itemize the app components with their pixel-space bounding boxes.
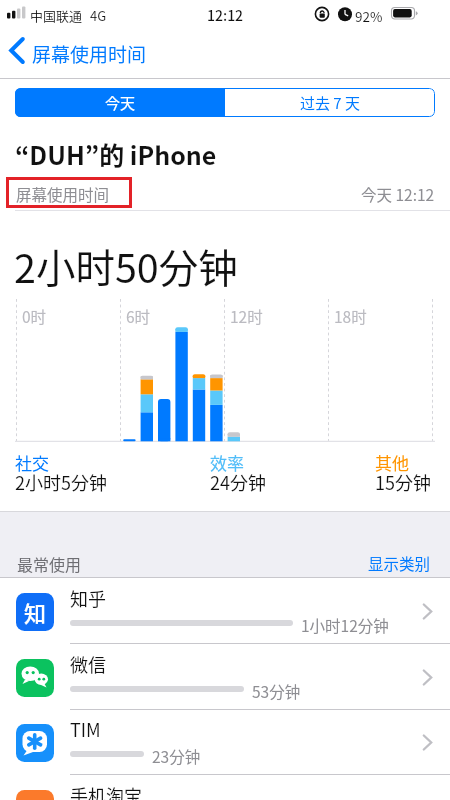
staticText: 中国联通 xyxy=(30,6,83,25)
staticText: 12时 xyxy=(230,305,263,327)
button[interactable]: 手机淘宝 xyxy=(0,775,450,800)
staticText: 手机淘宝 xyxy=(70,782,142,800)
button[interactable]: 屏幕使用时间 xyxy=(0,31,450,77)
staticText: 屏幕使用时间 xyxy=(32,40,147,68)
staticText: 12:12 xyxy=(207,5,244,25)
staticText: 92% xyxy=(355,6,383,26)
staticText: 15分钟 xyxy=(375,469,431,495)
button[interactable]: 知 xyxy=(0,578,450,644)
staticText: 2小时5分钟 xyxy=(15,469,107,495)
staticText: 18时 xyxy=(334,305,367,327)
staticText: 屏幕使用时间 xyxy=(16,183,110,205)
staticText: 4G xyxy=(90,6,107,25)
staticText: 最常使用 xyxy=(17,552,82,575)
staticText: 0时 xyxy=(22,305,47,327)
staticText: 今天 xyxy=(105,92,136,114)
staticText: 显示类别 xyxy=(368,552,431,574)
button[interactable]: 显示类别 xyxy=(0,552,431,574)
button[interactable]: 今天 xyxy=(15,88,225,117)
staticText: 53分钟 xyxy=(252,680,301,702)
staticText: 今天 12:12 xyxy=(361,183,435,205)
staticText: 知乎 xyxy=(70,585,106,611)
button[interactable]: 过去 7 天 xyxy=(225,88,435,117)
staticText: 过去 7 天 xyxy=(300,92,361,114)
staticText: “DUH”的 iPhone xyxy=(15,136,217,172)
staticText: 23分钟 xyxy=(152,745,201,767)
staticText: 1小时12分钟 xyxy=(301,614,389,636)
button[interactable]: 微信 xyxy=(0,644,450,710)
staticText: 知 xyxy=(24,596,47,628)
button[interactable]: TIM xyxy=(0,709,450,775)
staticText: 效率 xyxy=(210,450,244,475)
staticText: 6时 xyxy=(126,305,151,327)
staticText: 其他 xyxy=(375,450,409,475)
staticText: 社交 xyxy=(15,450,49,475)
staticText: TIM xyxy=(70,716,101,742)
staticText: 微信 xyxy=(70,651,106,677)
staticText: 24分钟 xyxy=(210,469,266,495)
staticText: 2小时50分钟 xyxy=(14,237,238,294)
